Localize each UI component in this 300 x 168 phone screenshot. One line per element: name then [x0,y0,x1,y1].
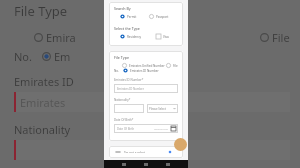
staticText: Emira [46,30,76,45]
staticText: Emirates [20,95,66,110]
staticText: Permit [127,15,137,19]
staticText: Emirates ID Number [117,87,144,91]
staticText: File [173,64,178,68]
staticText: Nationality* [114,98,131,102]
staticText: dd/mm/yyyy [154,127,169,130]
staticText: Select the Type [114,26,140,31]
staticText: Em [54,49,71,64]
staticText: File [272,30,290,45]
staticText: No. [14,49,32,64]
staticText: Emirates ID Number* [114,78,144,82]
staticText: Residency [127,35,142,39]
staticText: File Type [114,55,129,60]
button[interactable]: Help [174,138,187,151]
staticText: Search By [114,6,131,11]
staticText: Visa [163,35,169,39]
button[interactable] [114,104,144,113]
staticText: Emirates ID [14,74,74,89]
staticText: File Type [14,2,68,20]
button[interactable]: Please Select [147,104,178,113]
staticText: Date Of Birth* [114,118,134,122]
staticText: Date Of Birth [117,127,135,131]
staticText: No. [114,69,119,73]
staticText: Emirates Unified Number [129,64,165,68]
staticText: Nationality [14,122,71,137]
button[interactable]: Date Of Birth [114,124,178,133]
button[interactable]: Emirates ID Number [114,84,178,93]
button[interactable] [115,151,121,153]
staticText: Passport Information [156,15,178,19]
other: Pick date [171,126,176,131]
staticText: I'm not a robot [124,151,145,153]
staticText: Please Select [149,107,166,111]
staticText: Emirates ID Number [130,69,159,73]
